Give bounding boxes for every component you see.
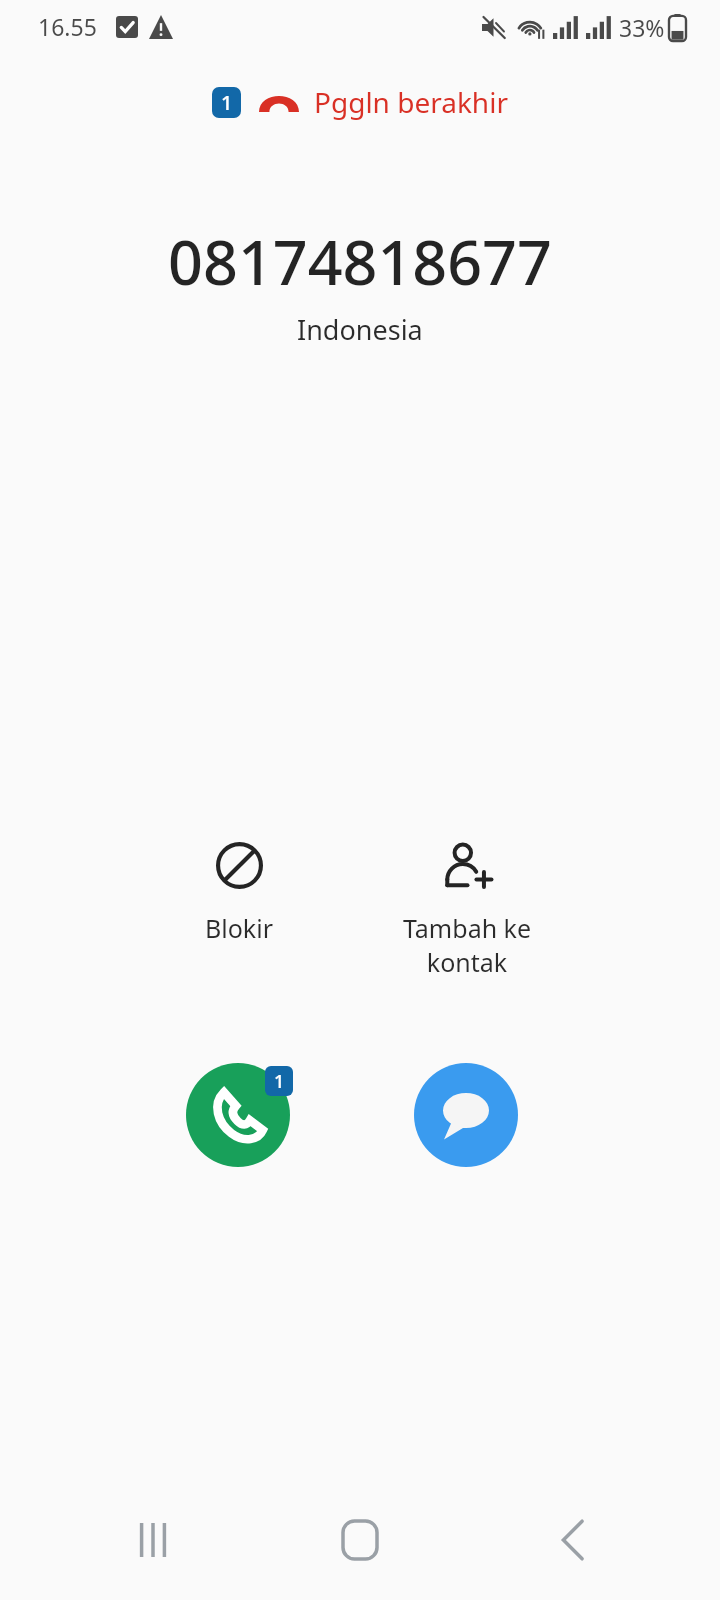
- staticText: 16.55: [38, 11, 97, 42]
- staticText: Indonesia: [297, 311, 423, 348]
- button[interactable]: Blokir: [168, 838, 310, 949]
- staticText: 1: [274, 1069, 285, 1094]
- staticText: 08174818677: [168, 220, 552, 303]
- button[interactable]: Home: [320, 1500, 400, 1580]
- button[interactable]: Tambah ke kontak: [394, 838, 540, 983]
- staticText: 33%: [619, 12, 665, 43]
- staticText: Tambah ke kontak: [394, 911, 540, 979]
- staticText: Pggln berakhir: [314, 83, 508, 121]
- button[interactable]: Recent apps: [113, 1500, 193, 1580]
- button[interactable]: Back: [533, 1500, 613, 1580]
- button[interactable]: Message: [414, 1063, 518, 1167]
- button[interactable]: Call: [186, 1063, 290, 1167]
- staticText: Blokir: [205, 911, 273, 945]
- staticText: 1: [221, 89, 233, 116]
